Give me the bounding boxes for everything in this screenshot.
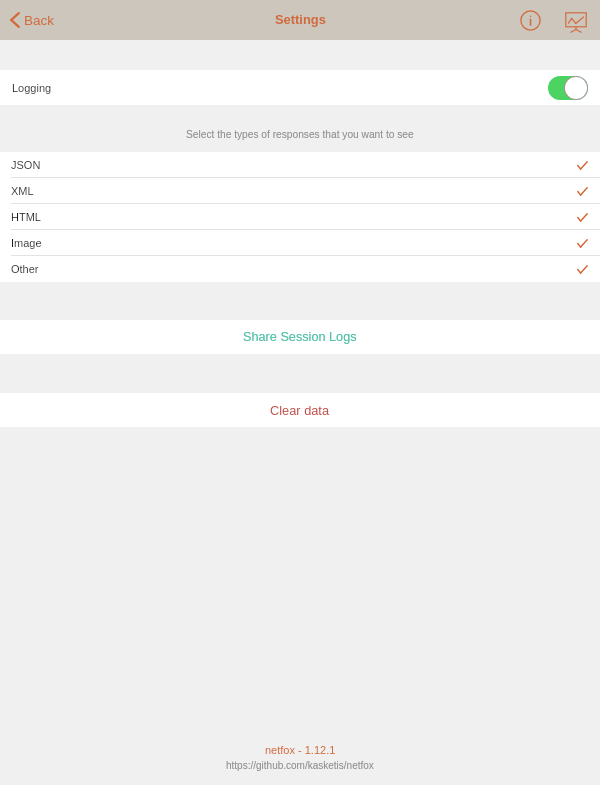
button[interactable]: Logging xyxy=(0,70,600,105)
button[interactable]: HTML xyxy=(0,204,600,230)
staticText: Share Session Logs xyxy=(243,330,357,344)
button[interactable]: XML xyxy=(0,178,600,204)
button[interactable]: Share Session Logs xyxy=(0,320,600,354)
staticText: Settings xyxy=(275,12,326,26)
button[interactable]: Clear data xyxy=(0,393,600,427)
staticText: Select the types of responses that you w… xyxy=(186,129,414,140)
staticText: netfox - 1.12.1 xyxy=(265,744,336,756)
staticText: https://github.com/kasketis/netfox xyxy=(226,760,374,771)
staticText: Logging xyxy=(12,82,52,94)
button[interactable]: Statistics xyxy=(562,5,592,35)
button[interactable]: Image xyxy=(0,230,600,256)
button[interactable]: Other xyxy=(0,256,600,282)
button[interactable]: Back xyxy=(10,12,55,28)
staticText: XML xyxy=(11,185,34,197)
button[interactable]: Logging toggle xyxy=(548,76,588,100)
staticText: HTML xyxy=(11,211,41,223)
button[interactable]: Info xyxy=(515,5,545,35)
staticText: Back xyxy=(24,13,55,28)
staticText: Image xyxy=(11,237,42,249)
staticText: Other xyxy=(11,263,39,275)
staticText: Clear data xyxy=(270,403,330,417)
staticText: JSON xyxy=(11,159,41,171)
button[interactable]: JSON xyxy=(0,152,600,178)
